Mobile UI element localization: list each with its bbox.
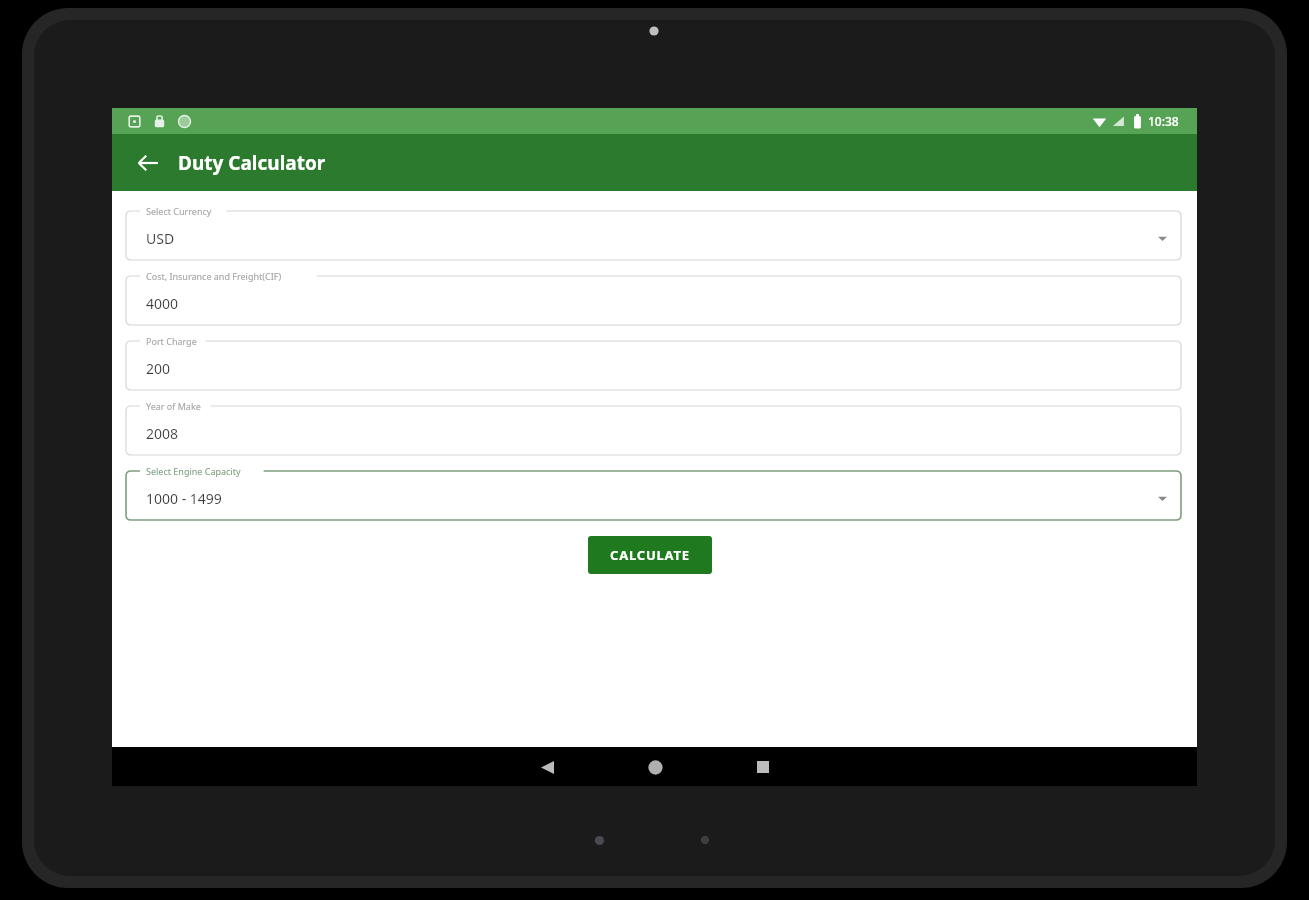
button[interactable]: Back — [128, 143, 168, 183]
staticText: Select Currency — [146, 205, 212, 217]
staticText: 1000 - 1499 — [146, 489, 222, 508]
staticText: Cost, Insurance and Freight(CIF) — [146, 270, 282, 282]
staticText: Select Engine Capacity — [146, 465, 241, 477]
button[interactable]: Port Charge — [126, 341, 1181, 390]
staticText: 200 — [146, 359, 171, 378]
staticText: Port Charge — [146, 335, 197, 347]
staticText: 4000 — [146, 294, 179, 313]
button[interactable]: Cost, Insurance and Freight(CIF) — [126, 276, 1181, 325]
button[interactable]: Year of Make — [126, 406, 1181, 455]
button[interactable]: Recent apps — [746, 750, 780, 784]
staticText: CALCULATE — [610, 546, 690, 564]
button[interactable]: Back — [530, 750, 564, 784]
staticText: USD — [146, 229, 175, 248]
button[interactable]: CALCULATE — [588, 536, 712, 574]
staticText: 2008 — [146, 424, 179, 443]
staticText: Duty Calculator — [178, 150, 326, 176]
staticText: 10:38 — [1148, 113, 1179, 129]
button[interactable]: Home — [638, 750, 672, 784]
button[interactable]: Select Engine Capacity — [126, 471, 1181, 520]
button[interactable]: Select Currency — [126, 211, 1181, 260]
staticText: Year of Make — [146, 400, 201, 412]
